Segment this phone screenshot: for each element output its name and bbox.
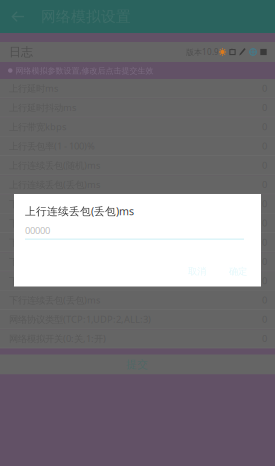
- staticText: 上行丢包率(1 - 100)%: [9, 140, 95, 152]
- staticText: 下行丢包率(1 - 100)%: [9, 255, 95, 268]
- button[interactable]: Save: [260, 48, 267, 55]
- staticText: 0: [262, 82, 267, 94]
- staticText: 下行连续丢包(丢包)ms: [9, 294, 100, 306]
- staticText: 网络模拟开关(0:关,1:开): [9, 332, 106, 345]
- staticText: 0: [262, 101, 267, 114]
- staticText: 确定: [229, 266, 247, 277]
- staticText: 上行连续丢包(丢包)ms: [25, 204, 134, 218]
- staticText: 0: [262, 140, 267, 152]
- staticText: 0: [262, 275, 267, 287]
- button[interactable]: 下行连续丢包(随机)ms: [0, 271, 275, 291]
- button[interactable]: Edit: [239, 48, 246, 56]
- staticText: 网络模拟参数设置,修改后点击提交生效: [15, 65, 153, 76]
- staticText: 0: [262, 217, 267, 229]
- staticText: 网络模拟设置: [41, 7, 131, 25]
- button[interactable]: 下行延时抖动ms: [0, 214, 275, 233]
- staticText: 下行带宽kbps: [9, 236, 66, 248]
- staticText: 0: [262, 198, 267, 210]
- staticText: 版本10.9: [186, 47, 219, 57]
- staticText: 上行带宽kbps: [9, 121, 66, 133]
- staticText: 0: [262, 294, 267, 306]
- button[interactable]: Brightness: [219, 48, 226, 55]
- staticText: 上行延时抖动ms: [9, 101, 76, 114]
- staticText: 0: [262, 178, 267, 191]
- staticText: 网络协议类型(TCP:1,UDP:2,ALL:3): [9, 313, 151, 325]
- button[interactable]: 日志: [0, 42, 42, 62]
- staticText: 0: [262, 121, 267, 133]
- staticText: 上行延时ms: [9, 82, 58, 94]
- staticText: 0: [262, 332, 267, 345]
- button[interactable]: 下行丢包率(1 - 100)%: [0, 252, 275, 271]
- button[interactable]: Grid: [229, 48, 236, 55]
- staticText: 下行延时抖动ms: [9, 217, 76, 229]
- staticText: 日志: [9, 45, 33, 59]
- staticText: 0: [262, 159, 267, 171]
- button[interactable]: 下行延时ms: [0, 194, 275, 214]
- staticText: 下行延时ms: [9, 198, 58, 210]
- staticText: 下行连续丢包(随机)ms: [9, 275, 100, 287]
- staticText: 0: [262, 255, 267, 268]
- staticText: 上行连续丢包(随机)ms: [9, 159, 100, 171]
- staticText: 0: [262, 313, 267, 325]
- button[interactable]: Network: [249, 48, 257, 56]
- staticText: 上行连续丢包(丢包)ms: [9, 178, 100, 191]
- staticText: 00000: [25, 224, 50, 237]
- staticText: 取消: [188, 266, 206, 277]
- button[interactable]: 下行带宽kbps: [0, 233, 275, 252]
- staticText: 提交: [126, 358, 148, 371]
- button[interactable]: 确定: [223, 264, 253, 278]
- staticText: 0: [262, 236, 267, 248]
- button[interactable]: 取消: [182, 264, 212, 278]
